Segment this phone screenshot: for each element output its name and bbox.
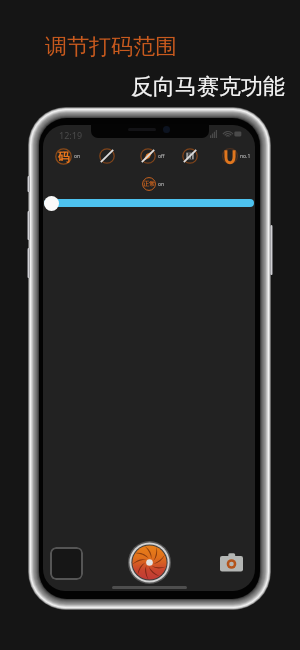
button[interactable]: Mosaic size slider xyxy=(44,195,254,211)
staticText: 调节打码范围 xyxy=(45,33,177,61)
staticText: no.1 xyxy=(240,153,251,160)
button[interactable]: off xyxy=(140,148,165,164)
staticText: 反向马赛克功能 xyxy=(131,73,285,101)
button[interactable]: no.1 xyxy=(222,148,251,164)
staticText: off xyxy=(158,153,165,160)
staticText: on xyxy=(158,181,165,188)
button[interactable]: 正常 xyxy=(142,177,165,191)
button[interactable]: Switch camera xyxy=(219,550,243,574)
button[interactable] xyxy=(99,148,115,164)
staticText: 码 xyxy=(58,149,70,164)
button[interactable] xyxy=(182,148,198,164)
staticText: on xyxy=(74,153,81,160)
button[interactable]: Gallery xyxy=(50,547,83,580)
staticText: 12:19 xyxy=(59,129,83,141)
button[interactable]: 码 xyxy=(55,148,81,165)
button[interactable]: Shutter xyxy=(128,541,171,584)
staticText: 正常 xyxy=(143,180,155,188)
